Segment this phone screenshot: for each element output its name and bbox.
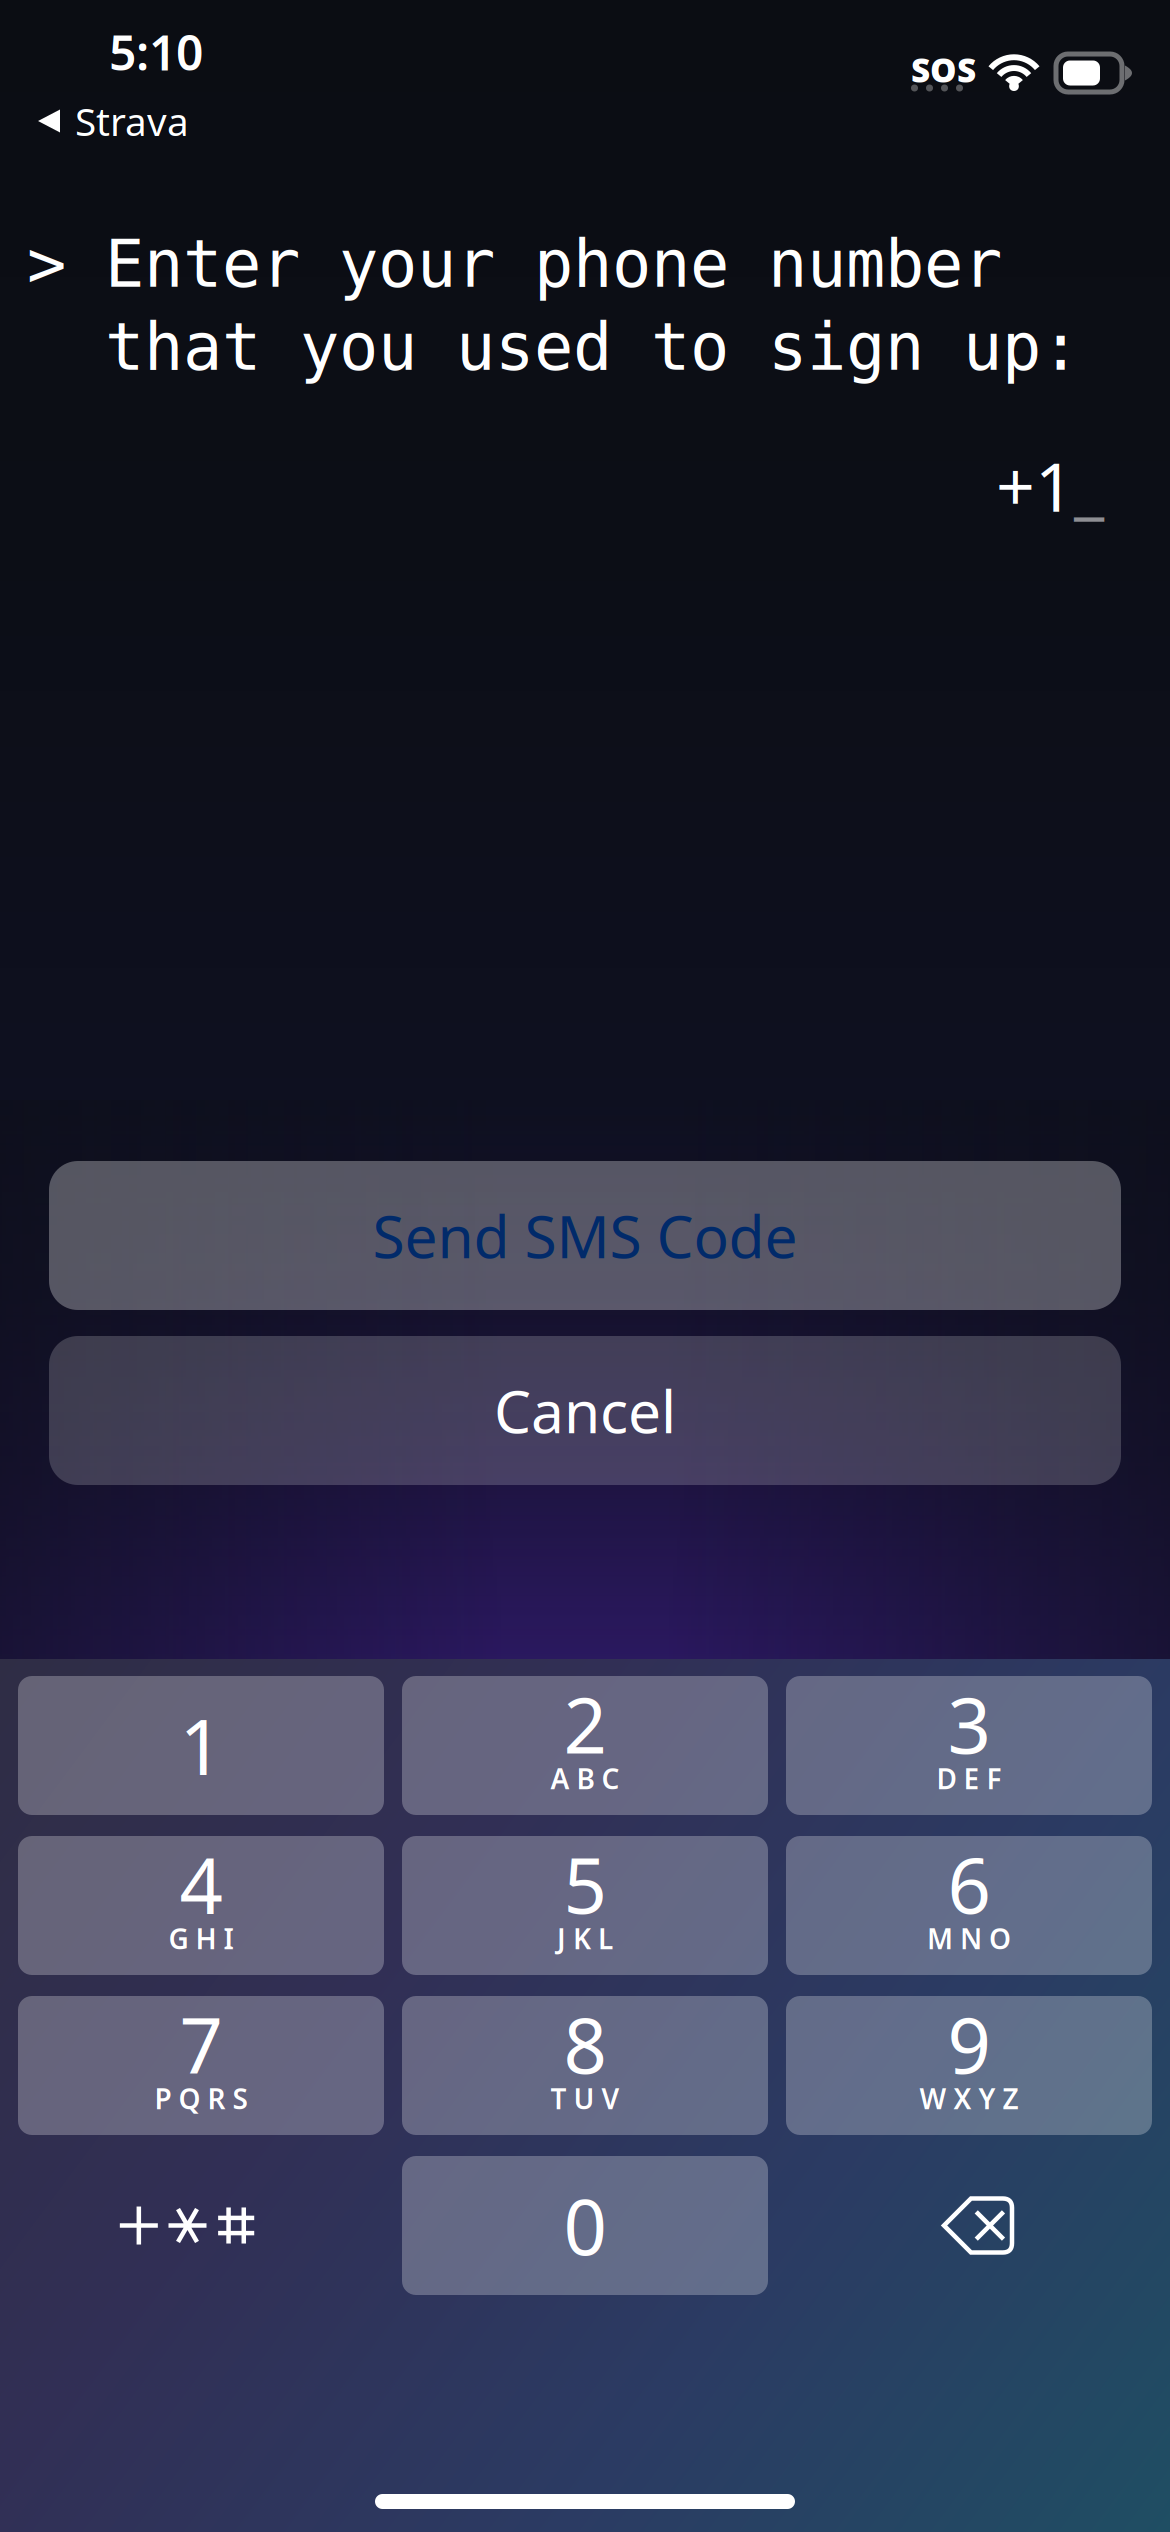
staticText: G H I <box>168 1920 233 1957</box>
staticText: > Enter your phone number <box>27 226 1002 302</box>
staticText: 5:10 <box>109 20 203 84</box>
button[interactable]: 8 <box>402 1996 768 2135</box>
button[interactable]: 4 <box>18 1836 384 1975</box>
button[interactable]: 7 <box>18 1996 384 2135</box>
staticText: Cancel <box>494 1371 676 1449</box>
button[interactable]: 5 <box>402 1836 768 1975</box>
staticText: J K L <box>557 1920 613 1957</box>
button[interactable]: 9 <box>786 1996 1152 2135</box>
staticText: M N O <box>927 1920 1011 1957</box>
staticText: 9 <box>947 1993 990 2094</box>
staticText: W X Y Z <box>919 2080 1018 2117</box>
button[interactable]: 6 <box>786 1836 1152 1975</box>
staticText: 3 <box>947 1673 990 1774</box>
button[interactable]: Strava <box>0 100 330 142</box>
staticText: 2 <box>563 1673 606 1774</box>
staticText: D E F <box>936 1760 1001 1797</box>
staticText: 4 <box>179 1833 222 1934</box>
staticText: 7 <box>179 1993 222 2094</box>
staticText: 5 <box>563 1833 606 1934</box>
staticText: T U V <box>550 2080 619 2117</box>
staticText: _ <box>1074 440 1104 530</box>
staticText: 0 <box>563 2175 606 2276</box>
button[interactable]: 0 <box>402 2156 768 2295</box>
button[interactable]: Symbols <box>18 2156 384 2295</box>
staticText: that you used to sign up: <box>27 309 1080 385</box>
staticText: A B C <box>550 1760 619 1797</box>
button[interactable]: 2 <box>402 1676 768 1815</box>
button[interactable]: Cancel <box>49 1336 1121 1485</box>
button[interactable]: 3 <box>786 1676 1152 1815</box>
staticText: 6 <box>947 1833 990 1934</box>
staticText: P Q R S <box>154 2080 247 2117</box>
staticText: +1 <box>996 440 1074 530</box>
staticText: SOS <box>911 47 976 92</box>
button[interactable]: Send SMS Code <box>49 1161 1121 1310</box>
button[interactable]: Delete <box>786 2156 1152 2295</box>
staticText: Send SMS Code <box>372 1196 797 1274</box>
button[interactable]: 1 <box>18 1676 384 1815</box>
staticText: 8 <box>563 1993 606 2094</box>
staticText: Strava <box>75 95 189 147</box>
staticText: 1 <box>179 1695 222 1796</box>
